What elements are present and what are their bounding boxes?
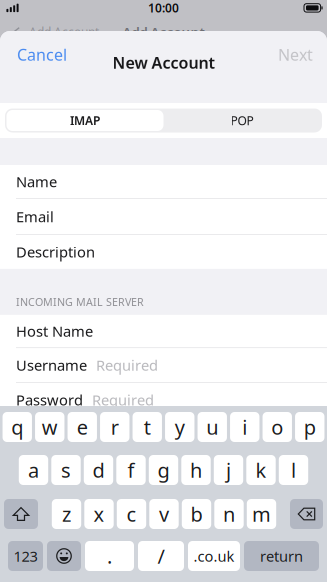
staticText: k [255, 457, 266, 483]
button[interactable]: Shift [4, 499, 38, 529]
button[interactable]: m [247, 499, 276, 529]
staticText: s [61, 457, 71, 483]
button[interactable]: Email [0, 199, 327, 234]
button[interactable]: Delete [290, 499, 323, 529]
staticText: Description [16, 242, 95, 262]
staticText: Required [92, 390, 154, 410]
button[interactable]: z [52, 499, 81, 529]
staticText: Name [16, 172, 57, 191]
button[interactable]: Next [275, 39, 316, 70]
button[interactable]: v [149, 499, 179, 529]
staticText: . [107, 543, 112, 569]
staticText: v [159, 501, 169, 527]
staticText: i [242, 414, 247, 440]
button[interactable]: g [149, 455, 178, 485]
button[interactable]: o [263, 412, 292, 442]
button[interactable]: s [51, 455, 81, 485]
button[interactable]: e [68, 412, 97, 442]
button[interactable]: j [214, 455, 243, 485]
staticText: o [271, 414, 283, 440]
staticText: Add Account [29, 24, 99, 40]
button[interactable]: w [35, 412, 64, 442]
staticText: return [260, 546, 303, 566]
staticText: y [175, 414, 185, 440]
staticText: w [42, 414, 58, 440]
button[interactable]: Username [0, 348, 327, 382]
button[interactable]: t [133, 412, 162, 442]
button[interactable]: return [244, 541, 319, 571]
staticText: .co.uk [193, 546, 234, 566]
button[interactable]: n [214, 499, 244, 529]
staticText: c [126, 501, 136, 527]
staticText: t [144, 414, 151, 440]
button[interactable]: r [100, 412, 129, 442]
button[interactable]: l [279, 455, 308, 485]
staticText: l [291, 457, 296, 483]
button[interactable]: b [182, 499, 211, 529]
staticText: POP [230, 112, 253, 128]
button[interactable]: x [84, 499, 114, 529]
button[interactable]: i [230, 412, 259, 442]
button[interactable]: a [19, 455, 48, 485]
button[interactable]: Name [0, 165, 327, 198]
staticText: j [226, 457, 231, 483]
staticText: Password [16, 390, 83, 410]
staticText: b [190, 501, 202, 527]
button[interactable]: y [165, 412, 194, 442]
staticText: n [223, 501, 235, 527]
staticText: IMAP [70, 112, 100, 128]
staticText: Cancel [17, 44, 67, 65]
staticText: a [28, 457, 39, 483]
staticText: m [252, 501, 271, 527]
button[interactable]: 123 [8, 541, 43, 571]
staticText: f [127, 457, 134, 483]
staticText: z [62, 501, 71, 527]
button[interactable]: k [246, 455, 276, 485]
staticText: d [92, 457, 104, 483]
button[interactable]: Host Name [0, 315, 327, 347]
staticText: Email [16, 207, 54, 226]
staticText: INCOMING MAIL SERVER [16, 295, 144, 309]
staticText: Username [16, 355, 87, 375]
button[interactable]: Password [0, 383, 327, 417]
staticText: Add Account [122, 23, 204, 41]
button[interactable]: u [198, 412, 227, 442]
button[interactable]: Emoji [47, 541, 81, 571]
button[interactable]: POP [163, 110, 320, 131]
button[interactable]: Description [0, 235, 327, 269]
staticText: e [77, 414, 88, 440]
button[interactable]: c [117, 499, 146, 529]
staticText: h [190, 457, 202, 483]
staticText: p [304, 414, 316, 440]
button[interactable]: f [116, 455, 146, 485]
button[interactable]: h [181, 455, 211, 485]
button[interactable]: / [138, 541, 184, 571]
staticText: New Account [112, 52, 214, 73]
staticText: / [157, 543, 164, 569]
staticText: Required [96, 355, 158, 375]
button[interactable]: q [3, 412, 32, 442]
staticText: Next [278, 44, 313, 65]
staticText: u [206, 414, 218, 440]
staticText: Host Name [16, 321, 93, 341]
button[interactable]: p [295, 412, 324, 442]
staticText: 10:00 [148, 0, 179, 16]
staticText: x [93, 501, 104, 527]
staticText: r [111, 414, 119, 440]
button[interactable]: d [84, 455, 113, 485]
button[interactable]: .co.uk [188, 541, 240, 571]
staticText: g [157, 457, 169, 483]
staticText: q [11, 414, 23, 440]
button[interactable]: IMAP [6, 110, 163, 131]
button[interactable]: Cancel [14, 39, 70, 70]
button[interactable]: . [85, 541, 134, 571]
staticText: 123 [13, 546, 37, 566]
